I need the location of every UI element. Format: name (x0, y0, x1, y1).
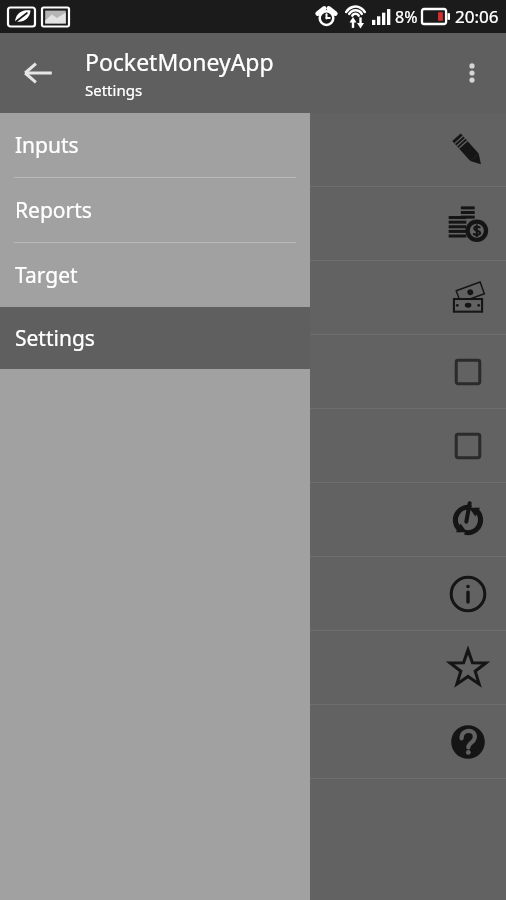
staticText: 8% (395, 6, 418, 28)
button[interactable]: Sync (0, 483, 506, 557)
button[interactable]: Target (0, 243, 310, 307)
button[interactable]: Coins (0, 187, 506, 261)
staticText: 20:06 (455, 5, 499, 28)
button[interactable]: Inputs (0, 113, 310, 177)
button[interactable]: Checkbox (0, 335, 506, 409)
staticText: Inputs (15, 131, 79, 160)
staticText: Settings (15, 324, 95, 353)
button[interactable]: Settings (0, 307, 310, 369)
button[interactable]: Reports (0, 178, 310, 242)
staticText: PocketMoneyApp (85, 46, 274, 77)
staticText: Reports (15, 196, 92, 225)
button[interactable]: More options (448, 49, 496, 97)
button[interactable]: Info (0, 557, 506, 631)
button[interactable]: Checkbox (0, 409, 506, 483)
button[interactable]: Back (8, 43, 68, 103)
button[interactable]: Banknotes (0, 261, 506, 335)
button[interactable]: Help (0, 705, 506, 779)
staticText: Target (15, 261, 78, 290)
button[interactable]: Favourite (0, 631, 506, 705)
button[interactable]: Edit (0, 113, 506, 187)
staticText: Settings (85, 80, 143, 100)
